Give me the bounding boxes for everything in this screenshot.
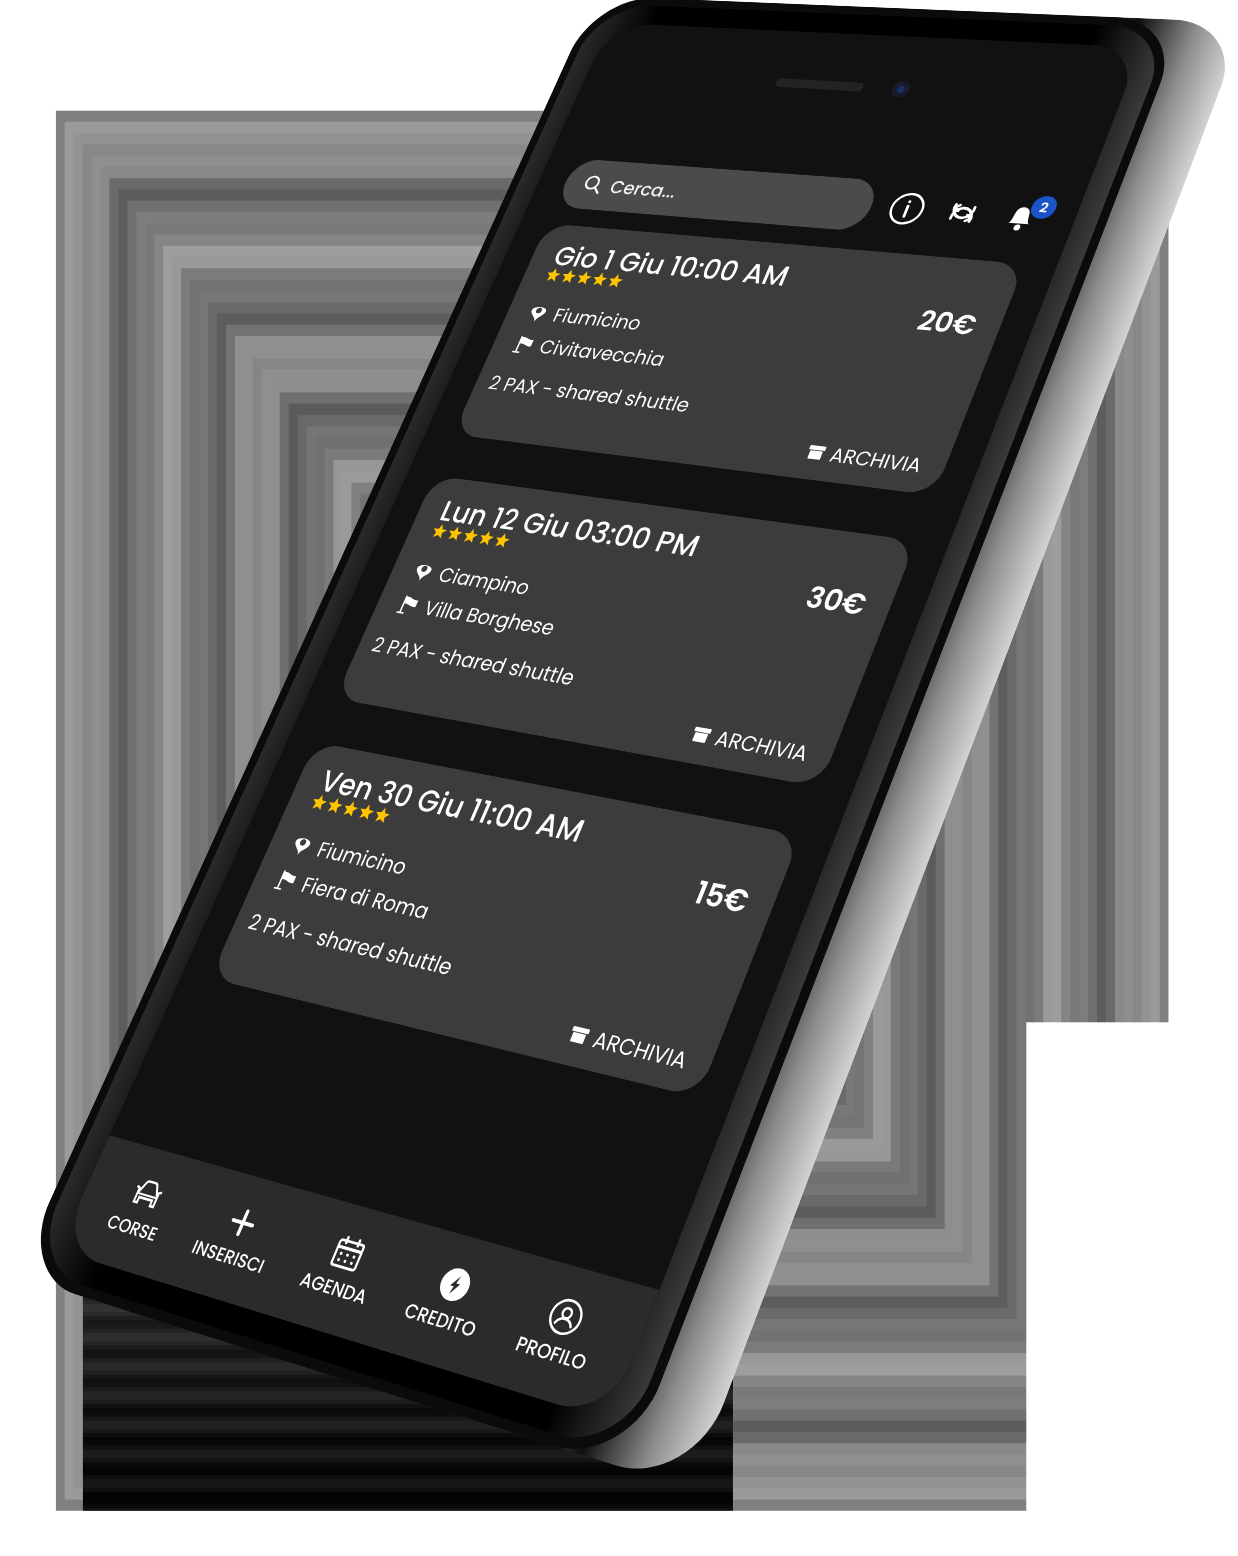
button[interactable]: CREDITO xyxy=(395,1250,502,1351)
button[interactable]: Aggiorna xyxy=(935,193,990,234)
button[interactable]: Ven 30 Giu 11:00 AM xyxy=(210,742,801,1097)
staticText: ARCHIVIA xyxy=(711,723,814,768)
staticText: Gio 1 Giu 10:00 AM xyxy=(547,237,796,295)
staticText: Cerca... xyxy=(606,174,682,203)
staticText: INSERISCI xyxy=(188,1233,269,1280)
button[interactable]: ARCHIVIA xyxy=(802,438,927,479)
staticText: 2 PAX - shared shuttle xyxy=(243,906,459,983)
button[interactable]: Cerca... xyxy=(555,158,882,232)
staticText: 2 PAX - shared shuttle xyxy=(367,630,580,692)
staticText: 2 xyxy=(1036,198,1052,217)
staticText: 30€ xyxy=(799,577,873,625)
button[interactable]: Notifiche xyxy=(991,195,1051,240)
staticText: CORSE xyxy=(103,1208,162,1248)
button[interactable]: Gio 1 Giu 10:00 AM xyxy=(453,223,1025,496)
staticText: 15€ xyxy=(687,871,756,924)
staticText: PROFILO xyxy=(511,1329,591,1377)
staticText: Ven 30 Giu 11:00 AM xyxy=(313,760,592,853)
button[interactable]: AGENDA xyxy=(291,1221,393,1317)
button[interactable]: PROFILO xyxy=(506,1282,612,1384)
staticText: Fiumicino xyxy=(312,834,412,882)
button[interactable]: Lun 12 Giu 03:00 PM xyxy=(335,475,917,787)
staticText: Civitavecchia xyxy=(535,333,670,373)
staticText: Ciampino xyxy=(434,560,535,602)
staticText: Fiera di Roma xyxy=(297,869,435,926)
button[interactable]: ARCHIVIA xyxy=(564,1018,693,1076)
staticText: ARCHIVIA xyxy=(588,1023,693,1076)
button[interactable]: CORSE xyxy=(98,1165,183,1254)
staticText: CREDITO xyxy=(400,1296,481,1344)
staticText: Lun 12 Giu 03:00 PM xyxy=(434,491,707,567)
button[interactable]: ARCHIVIA xyxy=(687,719,814,768)
staticText: AGENDA xyxy=(296,1265,372,1311)
staticText: ARCHIVIA xyxy=(826,441,927,479)
staticText: Fiumicino xyxy=(549,302,647,336)
staticText: Villa Borghese xyxy=(419,594,560,642)
staticText: 2 PAX - shared shuttle xyxy=(484,369,695,419)
staticText: 20€ xyxy=(911,301,983,345)
button[interactable]: Info xyxy=(880,188,934,229)
button[interactable]: INSERISCI xyxy=(183,1190,290,1286)
